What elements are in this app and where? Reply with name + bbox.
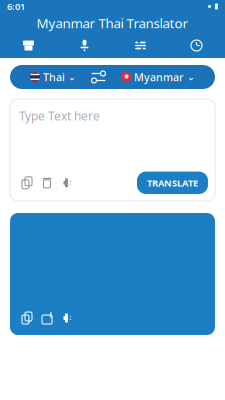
staticText: Thai <box>43 70 65 84</box>
staticText: 6:01 <box>7 0 25 13</box>
button[interactable]: Conversation <box>112 33 168 58</box>
staticText: Myanmar Thai Translator <box>36 14 188 32</box>
staticText: ⌄ <box>187 72 195 82</box>
button[interactable]: Speak translation <box>57 309 77 327</box>
button[interactable]: Thai <box>24 66 82 88</box>
staticText: ⌄ <box>68 72 76 82</box>
staticText: TRANSLATE <box>147 177 198 189</box>
staticText: Myanmar <box>134 70 184 84</box>
button[interactable]: Clear text <box>37 174 57 192</box>
staticText: Type Text here <box>19 108 100 124</box>
button[interactable]: Home <box>0 33 56 58</box>
button[interactable]: Myanmar <box>115 66 201 88</box>
button[interactable]: Swap languages <box>85 66 111 88</box>
button[interactable]: Copy translation <box>17 309 37 327</box>
button[interactable]: Voice <box>56 33 112 58</box>
button[interactable]: History <box>168 33 224 58</box>
button[interactable]: Speak <box>57 174 77 192</box>
button[interactable]: Share translation <box>37 309 57 327</box>
button[interactable]: TRANSLATE <box>137 172 208 194</box>
button[interactable]: Copy <box>17 174 37 192</box>
